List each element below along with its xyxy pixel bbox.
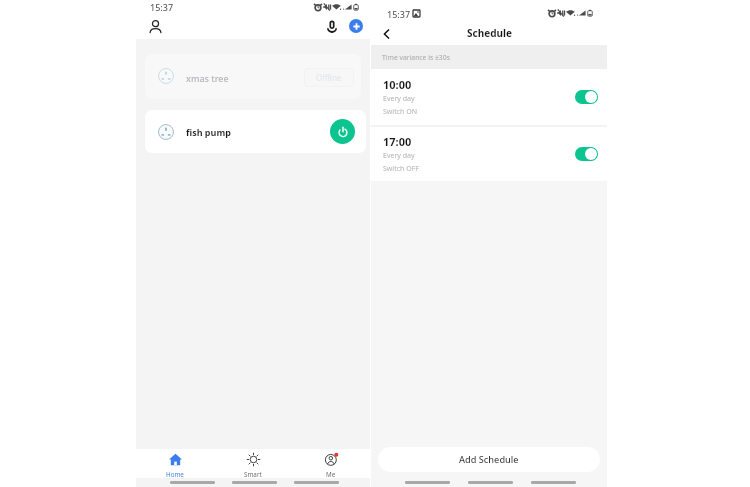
button[interactable]: Power bbox=[330, 119, 355, 144]
staticText: Smart bbox=[244, 470, 262, 478]
staticText: 15:37 bbox=[150, 1, 174, 13]
button[interactable]: Add device bbox=[347, 17, 365, 35]
staticText: Switch OFF bbox=[383, 164, 419, 174]
button[interactable]: Smart bbox=[214, 449, 292, 478]
staticText: 10:00 bbox=[383, 77, 412, 92]
button[interactable]: Home bbox=[136, 449, 214, 478]
button[interactable]: Back bbox=[377, 25, 395, 43]
button[interactable]: Schedule enabled bbox=[575, 90, 598, 104]
button[interactable]: Voice command bbox=[323, 18, 341, 36]
staticText: fish pump bbox=[186, 126, 231, 138]
button[interactable]: Schedule enabled bbox=[575, 147, 598, 161]
staticText: Schedule bbox=[467, 26, 512, 40]
staticText: 15:37 bbox=[387, 8, 411, 20]
button[interactable]: Add Schedule bbox=[378, 447, 600, 472]
button[interactable]: fish pump bbox=[145, 110, 366, 153]
staticText: Every day bbox=[383, 151, 415, 161]
button[interactable]: xmas tree bbox=[145, 54, 361, 99]
staticText: Switch ON bbox=[383, 107, 417, 117]
button[interactable]: 17:00 bbox=[371, 126, 607, 181]
staticText: Me bbox=[326, 470, 336, 478]
staticText: 17:00 bbox=[383, 134, 412, 149]
button[interactable]: Account bbox=[146, 17, 164, 35]
staticText: Add Schedule bbox=[459, 453, 519, 466]
button[interactable]: 10:00 bbox=[371, 69, 607, 124]
button[interactable]: Me bbox=[292, 449, 370, 478]
staticText: Every day bbox=[383, 94, 415, 104]
staticText: Home bbox=[166, 470, 184, 478]
button[interactable]: Offline bbox=[304, 68, 354, 87]
staticText: Offline bbox=[316, 72, 342, 83]
staticText: xmas tree bbox=[186, 72, 229, 84]
staticText: Time variance is ±30s bbox=[382, 53, 450, 62]
